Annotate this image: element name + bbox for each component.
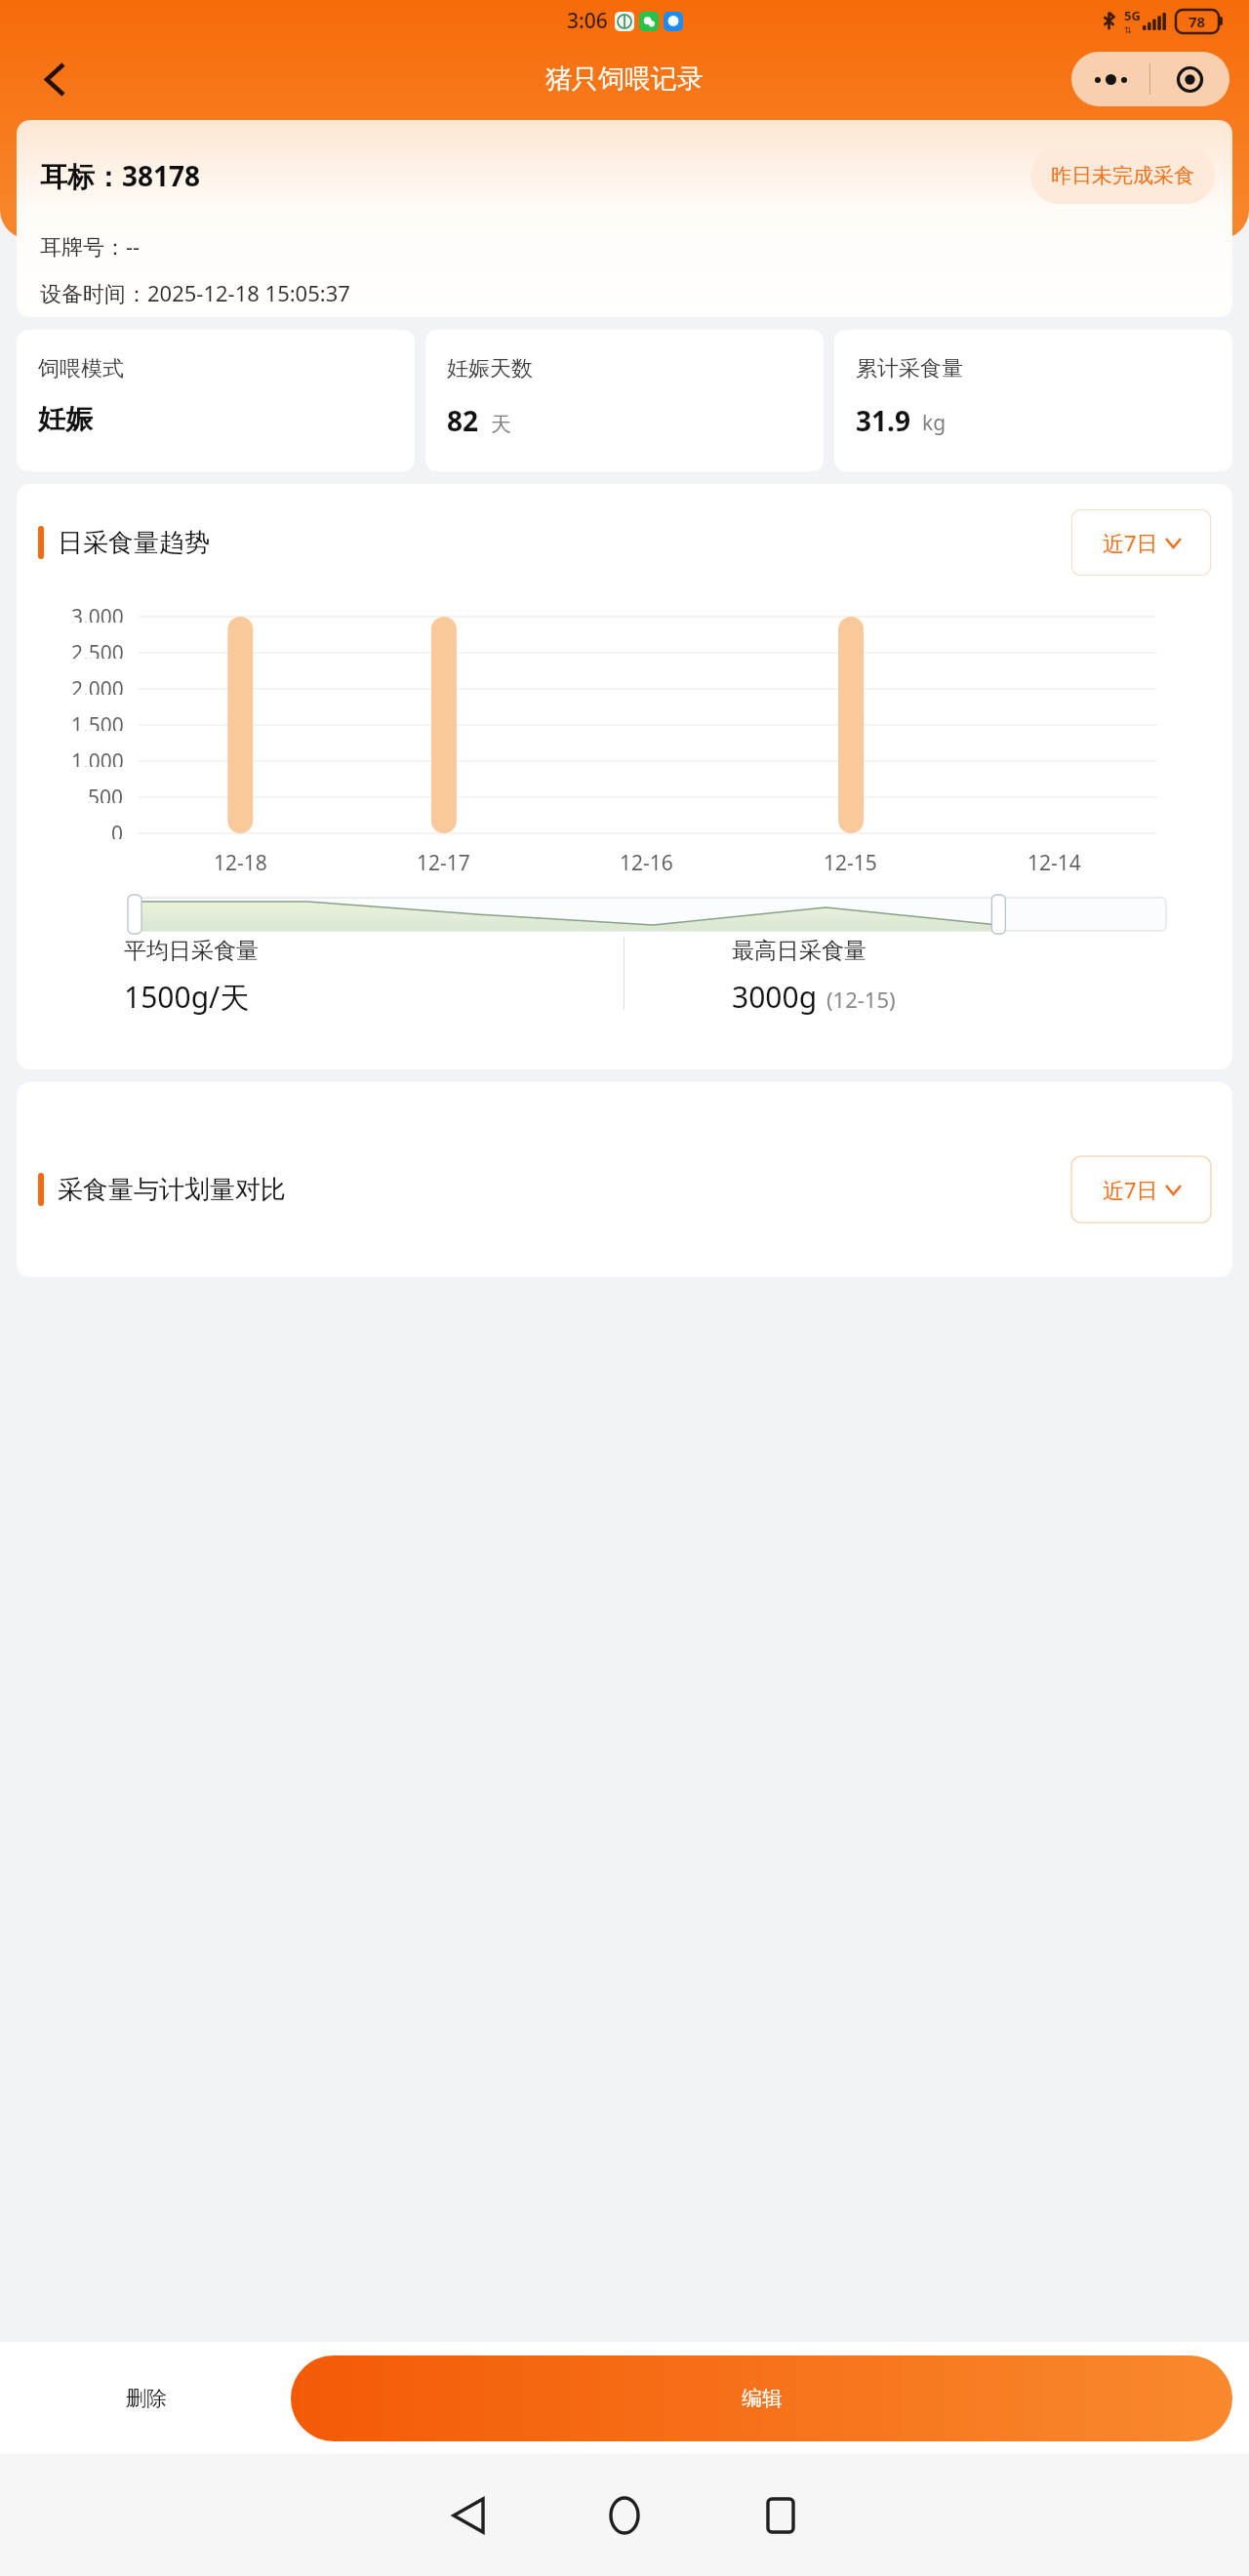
button[interactable]: 编辑	[291, 2355, 1232, 2441]
button[interactable]: More	[1071, 52, 1149, 106]
button[interactable]: 采食量与计划量对比	[17, 1082, 1232, 1277]
button[interactable]: Back	[429, 2476, 507, 2555]
button[interactable]: 饲喂模式	[17, 330, 415, 471]
staticText: 设备时间：2025-12-18 15:05:37	[40, 278, 350, 307]
staticText: 12-15	[824, 849, 877, 877]
staticText: 500	[88, 784, 124, 803]
button[interactable]: 删除	[17, 2355, 275, 2441]
staticText: 累计采食量	[856, 355, 963, 382]
staticText: 饲喂模式	[38, 355, 124, 382]
staticText: 删除	[126, 2386, 167, 2411]
staticText: 31.9	[856, 402, 910, 439]
button[interactable]: 近7日	[1071, 509, 1211, 576]
staticText: 12-16	[620, 849, 673, 877]
staticText: kg	[922, 409, 947, 437]
staticText: 12-14	[1027, 849, 1081, 877]
staticText: 0	[111, 820, 124, 839]
staticText: 1500g/天	[124, 977, 250, 1017]
staticText: (12-15)	[826, 985, 896, 1014]
staticText: 平均日采食量	[124, 937, 259, 965]
staticText: 编辑	[742, 2386, 783, 2411]
button[interactable]: 累计采食量	[834, 330, 1232, 471]
staticText: 12-17	[417, 849, 470, 877]
button[interactable]: 妊娠天数	[425, 330, 824, 471]
button[interactable]: 耳标：38178	[17, 120, 1232, 317]
button[interactable]: Back	[25, 50, 84, 108]
staticText: 近7日	[1103, 1175, 1158, 1204]
staticText: 82	[447, 402, 479, 439]
staticText: 耳牌号：--	[40, 231, 141, 261]
staticText: 妊娠	[38, 402, 93, 436]
staticText: 采食量与计划量对比	[58, 1174, 286, 1206]
staticText: ⇅	[1124, 25, 1132, 35]
staticText: 日采食量趋势	[58, 527, 210, 559]
staticText: 1,000	[71, 747, 124, 767]
staticText: 天	[491, 412, 511, 437]
button[interactable]: Recents	[742, 2476, 820, 2555]
staticText: 78	[1189, 12, 1206, 31]
button[interactable]: Close	[1150, 52, 1229, 106]
staticText: 3,000	[71, 603, 124, 623]
staticText: 1,500	[71, 711, 124, 731]
staticText: 5G	[1124, 7, 1141, 24]
staticText: 最高日采食量	[732, 937, 866, 965]
staticText: 妊娠天数	[447, 355, 533, 382]
staticText: 耳标：38178	[40, 157, 201, 194]
staticText: 昨日未完成采食	[1051, 163, 1194, 188]
button[interactable]: Home	[585, 2476, 664, 2555]
staticText: 12-18	[214, 849, 267, 877]
staticText: 2,500	[71, 639, 124, 659]
staticText: 2,000	[71, 675, 124, 695]
staticText: 3000g	[732, 977, 818, 1017]
staticText: 猪只饲喂记录	[545, 62, 704, 96]
staticText: 近7日	[1103, 528, 1158, 557]
staticText: 3:06	[567, 7, 608, 35]
